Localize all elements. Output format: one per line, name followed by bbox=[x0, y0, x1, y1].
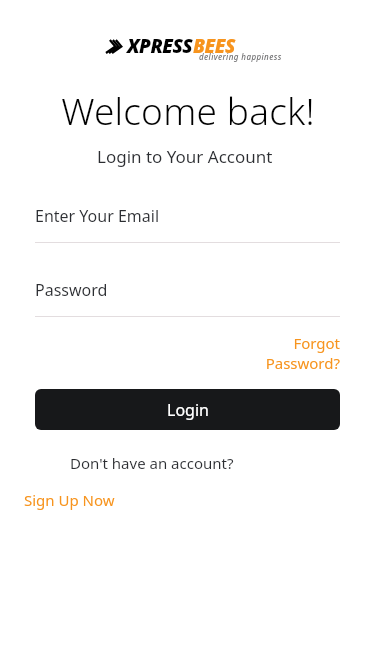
staticText: Login bbox=[167, 399, 209, 421]
button[interactable]: Enter Your Email bbox=[35, 196, 340, 236]
button[interactable]: Password bbox=[35, 270, 340, 310]
staticText: Welcome back! bbox=[61, 85, 315, 135]
staticText: Sign Up Now bbox=[24, 490, 115, 510]
staticText: Forgot Password? bbox=[265, 333, 340, 373]
staticText: XPRESS bbox=[127, 33, 193, 59]
staticText: Password bbox=[35, 279, 108, 301]
staticText: Enter Your Email bbox=[35, 205, 160, 227]
staticText: BEES bbox=[193, 33, 235, 59]
button[interactable]: Login bbox=[35, 389, 340, 430]
staticText: Login to Your Account bbox=[97, 145, 273, 168]
staticText: delivering happiness bbox=[199, 51, 282, 62]
button[interactable]: Sign Up Now bbox=[24, 490, 115, 510]
button[interactable]: Forgot Password? bbox=[265, 333, 340, 373]
staticText: Don't have an account? bbox=[70, 453, 234, 473]
